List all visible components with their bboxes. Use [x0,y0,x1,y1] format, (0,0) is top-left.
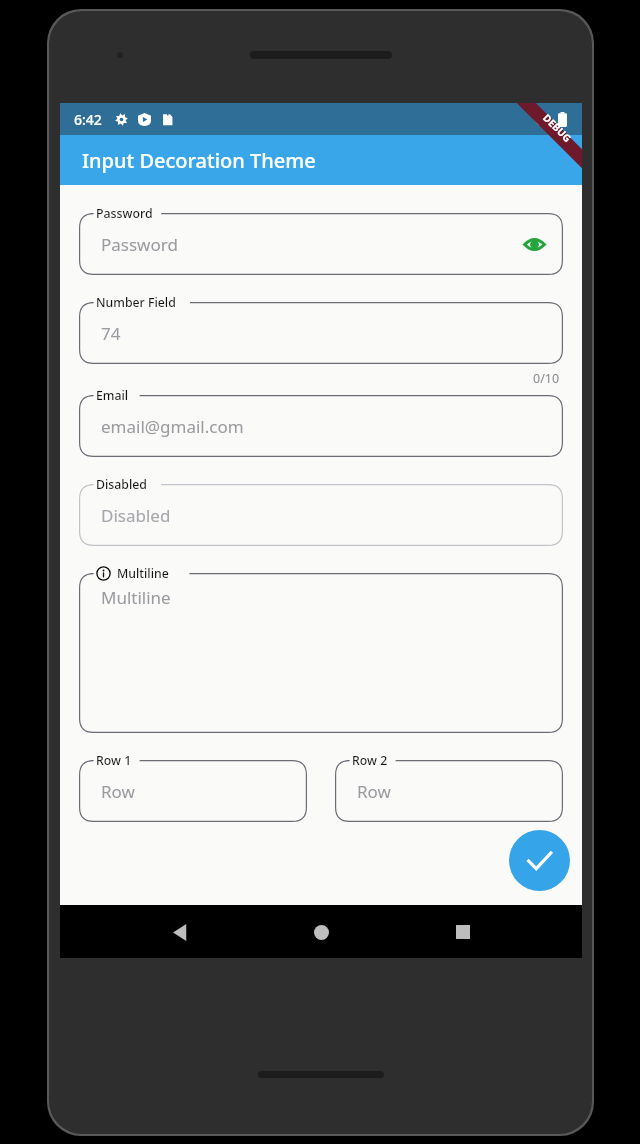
button[interactable]: Row [335,760,563,822]
button[interactable]: email@gmail.com [79,395,563,457]
button[interactable]: 74 [79,302,563,364]
staticText: Disabled [96,476,147,493]
staticText: DEBUG [540,111,575,145]
button[interactable]: Recent apps [441,910,485,954]
button[interactable]: Disabled [79,484,563,546]
staticText: Row [101,780,135,803]
staticText: 74 [101,322,121,345]
staticText: 0/10 [533,370,560,387]
staticText: Multiline [101,586,171,609]
staticText: Row [357,780,391,803]
staticText: Input Decoration Theme [82,147,316,174]
staticText: Password [96,205,153,222]
button[interactable]: Row [79,760,307,822]
button[interactable]: Multiline [79,573,563,733]
button[interactable]: Home [299,910,343,954]
staticText: Email [96,387,129,404]
button[interactable]: Show password [518,228,550,260]
button[interactable]: Password [79,213,563,275]
staticText: 6:42 [74,110,102,129]
staticText: Number Field [96,294,176,311]
staticText: Row 2 [352,752,388,769]
staticText: Multiline [117,565,169,582]
staticText: Disabled [101,504,171,527]
button[interactable]: Submit [509,830,570,891]
button[interactable]: Back [158,910,202,954]
staticText: email@gmail.com [101,415,244,438]
staticText: Password [101,233,178,256]
staticText: Row 1 [96,752,132,769]
